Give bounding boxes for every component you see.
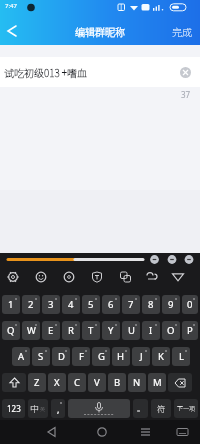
button[interactable] (0, 420, 200, 444)
staticText: 3 (48, 298, 54, 311)
staticText: K (158, 350, 164, 363)
button[interactable]: W (22, 321, 40, 340)
button[interactable]: 6 (102, 295, 120, 314)
button[interactable]: Z (28, 373, 46, 392)
button[interactable]: Y (102, 321, 120, 340)
staticText: J (140, 350, 143, 363)
button[interactable]: 5 (82, 295, 100, 314)
button[interactable] (68, 399, 130, 418)
staticText: 7 (128, 298, 134, 311)
button[interactable] (168, 373, 192, 392)
button[interactable]: 0 (182, 295, 198, 314)
button[interactable]: P (182, 321, 198, 340)
button[interactable]: 。 (133, 399, 148, 418)
button[interactable]: O (162, 321, 180, 340)
button[interactable]: I (142, 321, 160, 340)
button[interactable]: F (72, 347, 90, 366)
staticText: , (57, 403, 60, 415)
button[interactable]: 1 (2, 295, 20, 314)
staticText: 。 (137, 403, 145, 415)
button[interactable]: X (48, 373, 66, 392)
button[interactable]: 3 (42, 295, 60, 314)
staticText: 2 (28, 298, 34, 311)
button[interactable]: 试吃初级013 +嗜血 (0, 57, 200, 87)
staticText: V (94, 376, 100, 389)
staticText: Z (34, 376, 40, 389)
staticText: N (133, 376, 141, 389)
button[interactable]: B (108, 373, 126, 392)
staticText: C (74, 376, 81, 389)
staticText: E (48, 324, 54, 337)
staticText: L (179, 350, 184, 363)
staticText: W (27, 324, 36, 337)
button[interactable]: N (128, 373, 146, 392)
staticText: M (153, 376, 162, 389)
staticText: 试吃初级013 +嗜血 (4, 65, 88, 79)
button[interactable]: , (51, 399, 65, 418)
button[interactable]: E (42, 321, 60, 340)
button[interactable]: 4 (62, 295, 80, 314)
staticText: 英 (40, 405, 46, 412)
staticText: 8 (148, 298, 154, 311)
button[interactable]: G (92, 347, 110, 366)
button[interactable]: K (152, 347, 170, 366)
staticText: 123 (7, 403, 21, 414)
staticText: 37 (181, 89, 191, 100)
staticText: 1 (8, 298, 14, 311)
staticText: Y (108, 324, 114, 337)
button[interactable]: 完成 (172, 24, 192, 38)
button[interactable]: 中 (28, 399, 48, 418)
staticText: 0 (187, 298, 193, 311)
button[interactable]: 下一项 (174, 399, 198, 418)
button[interactable]: V (88, 373, 106, 392)
staticText: P (187, 324, 193, 337)
button[interactable]: T (82, 321, 100, 340)
button[interactable] (0, 19, 24, 43)
staticText: B (114, 376, 121, 389)
staticText: 编辑群昵称 (75, 24, 125, 38)
button[interactable]: L (172, 347, 190, 366)
button[interactable]: 2 (22, 295, 40, 314)
button[interactable]: A (12, 347, 30, 366)
button[interactable]: 7 (122, 295, 140, 314)
button[interactable]: H (112, 347, 130, 366)
staticText: U (128, 324, 135, 337)
staticText: 中 (30, 402, 40, 415)
staticText: 6 (108, 298, 114, 311)
staticText: S (38, 350, 44, 363)
button[interactable]: S (32, 347, 50, 366)
staticText: 符 (157, 403, 165, 415)
staticText: 下一项 (177, 404, 196, 413)
button[interactable] (180, 67, 191, 78)
button[interactable]: 8 (142, 295, 160, 314)
staticText: 4 (68, 298, 74, 311)
staticText: 9 (168, 298, 174, 311)
button[interactable]: 符 (151, 399, 171, 418)
button[interactable]: 9 (162, 295, 180, 314)
button[interactable]: J (132, 347, 150, 366)
staticText: 7:47 (5, 2, 17, 10)
button[interactable]: C (68, 373, 86, 392)
button[interactable] (2, 373, 26, 392)
staticText: O (167, 324, 175, 337)
staticText: R (68, 324, 74, 337)
button[interactable]: Q (2, 321, 20, 340)
button[interactable]: 123 (2, 399, 25, 418)
staticText: H (117, 350, 125, 363)
button[interactable]: M (148, 373, 166, 392)
staticText: F (79, 350, 84, 363)
button[interactable]: U (122, 321, 140, 340)
button[interactable]: R (62, 321, 80, 340)
staticText: Q (7, 324, 15, 337)
staticText: I (149, 324, 153, 337)
staticText: A (18, 350, 25, 363)
staticText: 5 (88, 298, 94, 311)
button[interactable]: D (52, 347, 70, 366)
staticText: D (58, 350, 65, 363)
staticText: G (98, 350, 105, 363)
staticText: X (54, 376, 60, 389)
staticText: T (88, 324, 94, 337)
button[interactable] (0, 265, 200, 289)
